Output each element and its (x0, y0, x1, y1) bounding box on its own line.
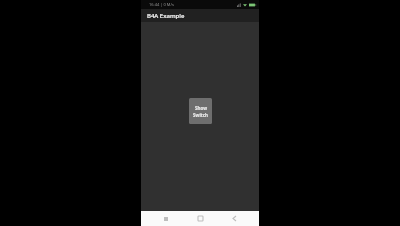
button[interactable]: Back (225, 211, 243, 226)
staticText: B4A Example (147, 12, 185, 20)
button[interactable]: Home (191, 211, 209, 226)
staticText: Switch (193, 112, 208, 118)
staticText: 16:44 | 0 M/s (149, 2, 174, 7)
staticText: Show (195, 105, 207, 111)
button[interactable]: Recent apps (157, 211, 175, 226)
button[interactable]: Show (189, 98, 212, 124)
